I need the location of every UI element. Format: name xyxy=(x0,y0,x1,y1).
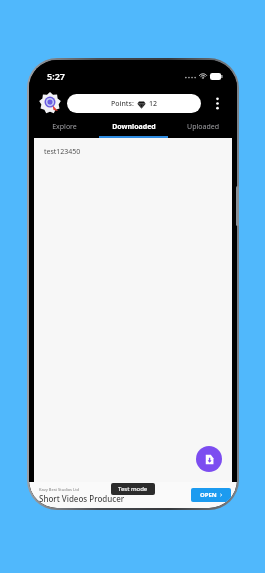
button[interactable]: OPEN xyxy=(191,488,231,502)
button[interactable]: Explore xyxy=(29,118,99,136)
staticText: Test mode xyxy=(118,485,148,493)
staticText: Downloaded xyxy=(112,122,156,132)
button[interactable]: App logo xyxy=(39,92,61,114)
staticText: 5:27 xyxy=(47,70,65,82)
staticText: test123450 xyxy=(44,147,81,157)
staticText: Uploaded xyxy=(187,122,219,132)
button[interactable]: More options xyxy=(207,93,227,113)
staticText: Kavy Best Studios Ltd xyxy=(39,487,80,492)
button[interactable]: Downloaded xyxy=(99,118,168,136)
button[interactable]: Uploaded xyxy=(168,118,237,136)
staticText: OPEN xyxy=(200,491,217,499)
button[interactable]: Download file xyxy=(196,446,222,472)
button[interactable]: Points: xyxy=(67,94,201,113)
button[interactable]: Kavy Best Studios Ltd xyxy=(29,482,237,508)
staticText: Short Videos Producer xyxy=(39,493,125,504)
staticText: 12 xyxy=(149,99,158,109)
staticText: Explore xyxy=(52,122,77,132)
staticText: Points: xyxy=(111,99,134,109)
